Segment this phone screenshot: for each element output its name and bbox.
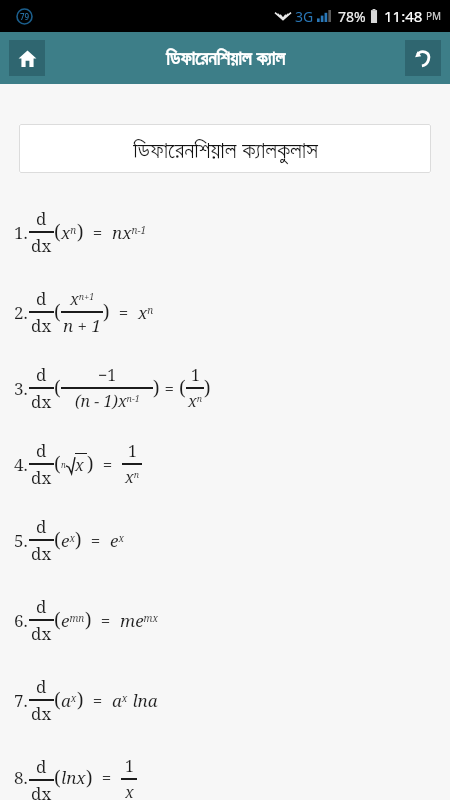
staticText: emn <box>61 609 85 632</box>
staticText: = <box>94 453 122 476</box>
staticText: = <box>82 529 110 552</box>
staticText: PM <box>426 9 442 23</box>
staticText: ax <box>112 689 128 712</box>
staticText: = <box>160 377 179 400</box>
staticText: 3G <box>295 7 314 26</box>
staticText: lnx <box>61 766 86 789</box>
staticText: = <box>84 221 112 244</box>
staticText: dx <box>31 390 52 413</box>
staticText: 4. <box>14 453 28 476</box>
staticText: 1 <box>125 755 134 777</box>
staticText: d <box>36 363 47 386</box>
staticText: 11:48 <box>384 6 423 26</box>
staticText: 1. <box>14 221 28 244</box>
staticText: d <box>36 207 47 230</box>
staticText: ) <box>77 219 84 245</box>
staticText: ( <box>54 527 61 553</box>
staticText: xn <box>188 390 203 412</box>
staticText: dx <box>31 542 52 565</box>
button[interactable]: Home <box>9 40 45 76</box>
staticText: ( <box>54 765 61 791</box>
staticText: ) <box>75 527 82 553</box>
staticText: 7. <box>14 689 28 712</box>
button[interactable]: ডিফারেনশিয়াল ক্যালকুলাস <box>19 124 431 173</box>
staticText: ) <box>85 607 92 633</box>
staticText: d <box>36 755 47 778</box>
staticText: ) <box>77 687 84 713</box>
staticText: ex <box>61 529 75 552</box>
staticText: d <box>36 595 47 618</box>
staticText: ) <box>86 765 93 791</box>
staticText: = <box>110 301 138 324</box>
staticText: −1 <box>98 364 117 386</box>
staticText: dx <box>31 234 52 257</box>
staticText: ( <box>54 687 61 713</box>
staticText: ax <box>61 689 77 712</box>
staticText: d <box>36 515 47 538</box>
staticText: = <box>92 609 120 632</box>
staticText: ( <box>54 607 61 633</box>
staticText: 5. <box>14 529 28 552</box>
staticText: 3. <box>14 377 28 400</box>
staticText: 1 <box>191 364 200 386</box>
staticText: 1 <box>128 440 137 462</box>
staticText: xn <box>61 221 77 244</box>
staticText: = <box>93 766 121 789</box>
staticText: ) <box>87 451 94 477</box>
staticText: dx <box>31 782 52 800</box>
staticText: dx <box>31 622 52 645</box>
staticText: n + 1 <box>63 314 102 337</box>
staticText: ( <box>54 375 61 401</box>
staticText: d <box>36 439 47 462</box>
staticText: 78% <box>338 7 366 26</box>
staticText: ex <box>110 529 124 552</box>
staticText: ) <box>153 375 160 401</box>
staticText: lna <box>128 689 158 712</box>
staticText: 2. <box>14 301 28 324</box>
staticText: 6. <box>14 609 28 632</box>
staticText: xn <box>138 301 154 324</box>
staticText: ( <box>54 451 61 477</box>
staticText: (n − 1)xn−1 <box>75 390 140 412</box>
staticText: xn <box>125 466 140 488</box>
staticText: xn+1 <box>70 288 95 310</box>
staticText: ডিফারেনশিয়াল ক্যালকুলাস <box>133 133 318 164</box>
staticText: n <box>61 459 66 470</box>
button[interactable]: Back <box>405 40 441 76</box>
staticText: ডিফারেনশিয়াল ক্যাল <box>166 45 285 71</box>
staticText: dx <box>31 702 52 725</box>
staticText: ) <box>204 375 211 401</box>
staticText: dx <box>31 466 52 489</box>
staticText: ) <box>103 299 110 325</box>
staticText: ( <box>179 375 186 401</box>
staticText: x <box>75 454 84 476</box>
staticText: ( <box>54 219 61 245</box>
staticText: 79 <box>20 11 30 22</box>
staticText: dx <box>31 314 52 337</box>
staticText: d <box>36 675 47 698</box>
staticText: nxn−1 <box>112 221 147 244</box>
staticText: = <box>84 689 112 712</box>
staticText: 8. <box>14 766 28 789</box>
staticText: memx <box>120 609 159 632</box>
staticText: ( <box>54 299 61 325</box>
staticText: x <box>125 781 134 800</box>
staticText: d <box>36 287 47 310</box>
